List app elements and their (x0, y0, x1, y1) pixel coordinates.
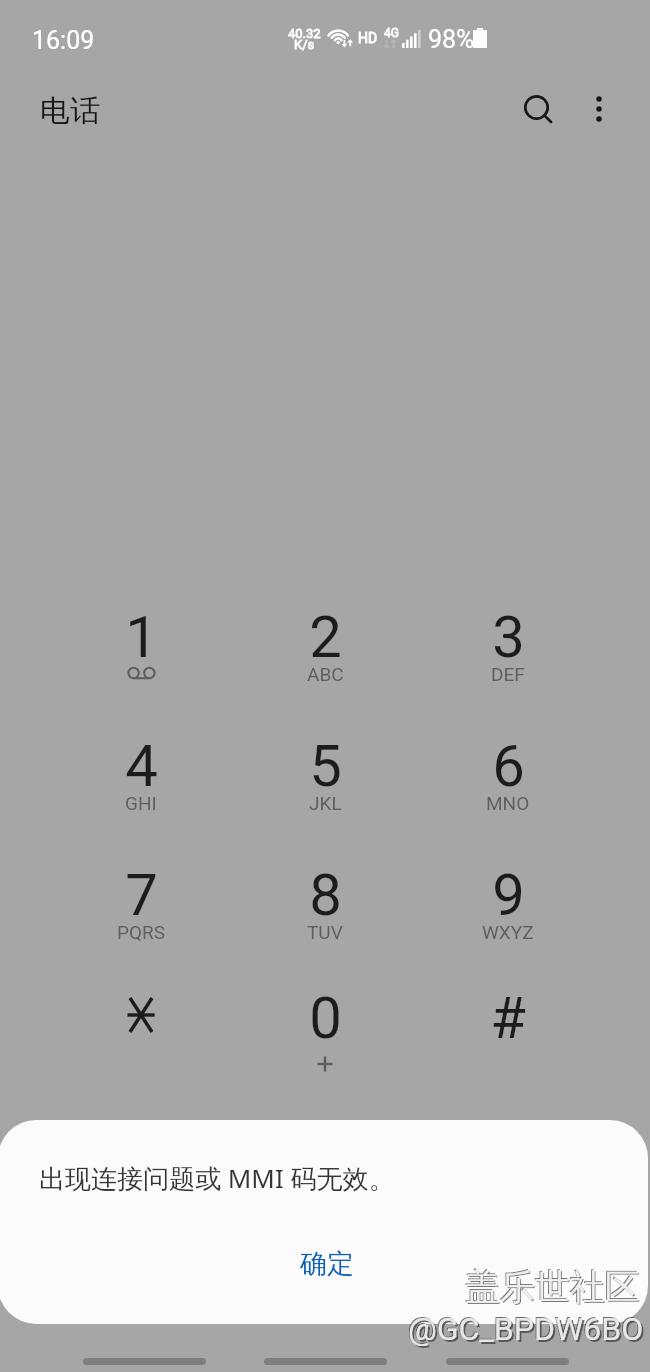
button[interactable]: 4 (51, 718, 231, 840)
staticText: GHI (125, 792, 157, 814)
staticText: 盖乐世社区 (465, 1265, 640, 1309)
staticText: JKL (309, 792, 342, 814)
staticText: 确定 (300, 1247, 354, 1281)
button[interactable]: 2 (235, 589, 415, 711)
staticText: WXYZ (482, 921, 534, 943)
button[interactable]: 7 (51, 847, 231, 969)
staticText: 盖乐世社区 (464, 1264, 639, 1308)
staticText: 0 (309, 984, 342, 1052)
staticText: 电话 (40, 92, 100, 130)
staticText: 4 (125, 732, 158, 800)
staticText: 40.32 (288, 26, 321, 41)
staticText: 1 (125, 603, 158, 671)
staticText: 7 (125, 861, 158, 929)
staticText: 2 (309, 603, 342, 671)
staticText: 98% (428, 25, 475, 54)
staticText: PQRS (117, 921, 166, 943)
button[interactable]: 6 (418, 718, 598, 840)
staticText: 16:09 (32, 26, 95, 55)
button[interactable]: 9 (418, 847, 598, 969)
staticText: 6 (492, 732, 525, 800)
staticText: 出现连接问题或 MMI 码无效。 (39, 1160, 395, 1196)
button[interactable]: Back (446, 1358, 569, 1365)
staticText: MNO (486, 792, 530, 814)
button[interactable]: # (418, 970, 598, 1092)
staticText: # (490, 984, 526, 1052)
staticText: @GC_BPDW6BO (408, 1310, 644, 1348)
staticText: @GC_BPDW6BO (407, 1309, 643, 1347)
button[interactable]: Home (264, 1358, 387, 1365)
button[interactable]: 确定 (254, 1233, 400, 1295)
button[interactable]: More options (571, 81, 627, 137)
staticText: TUV (307, 921, 343, 943)
staticText: DEF (491, 663, 525, 685)
button[interactable]: 5 (235, 718, 415, 840)
staticText: ABC (307, 663, 344, 685)
staticText: HD (358, 30, 378, 46)
staticText: 5 (309, 732, 342, 800)
staticText: 盖乐世社区 (466, 1266, 641, 1310)
button[interactable]: 3 (418, 589, 598, 711)
staticText: 4G (384, 26, 399, 40)
button[interactable]: 1 (51, 589, 231, 711)
staticText: 9 (492, 861, 525, 929)
staticText: @GC_BPDW6BO (410, 1312, 646, 1350)
button[interactable] (51, 970, 231, 1092)
staticText: 8 (309, 861, 342, 929)
button[interactable]: Search (507, 79, 563, 135)
staticText: 3 (492, 603, 525, 671)
button[interactable]: Recents (83, 1358, 206, 1365)
button[interactable]: 0 (235, 970, 415, 1092)
staticText: K/s (294, 37, 315, 52)
button[interactable]: 8 (235, 847, 415, 969)
